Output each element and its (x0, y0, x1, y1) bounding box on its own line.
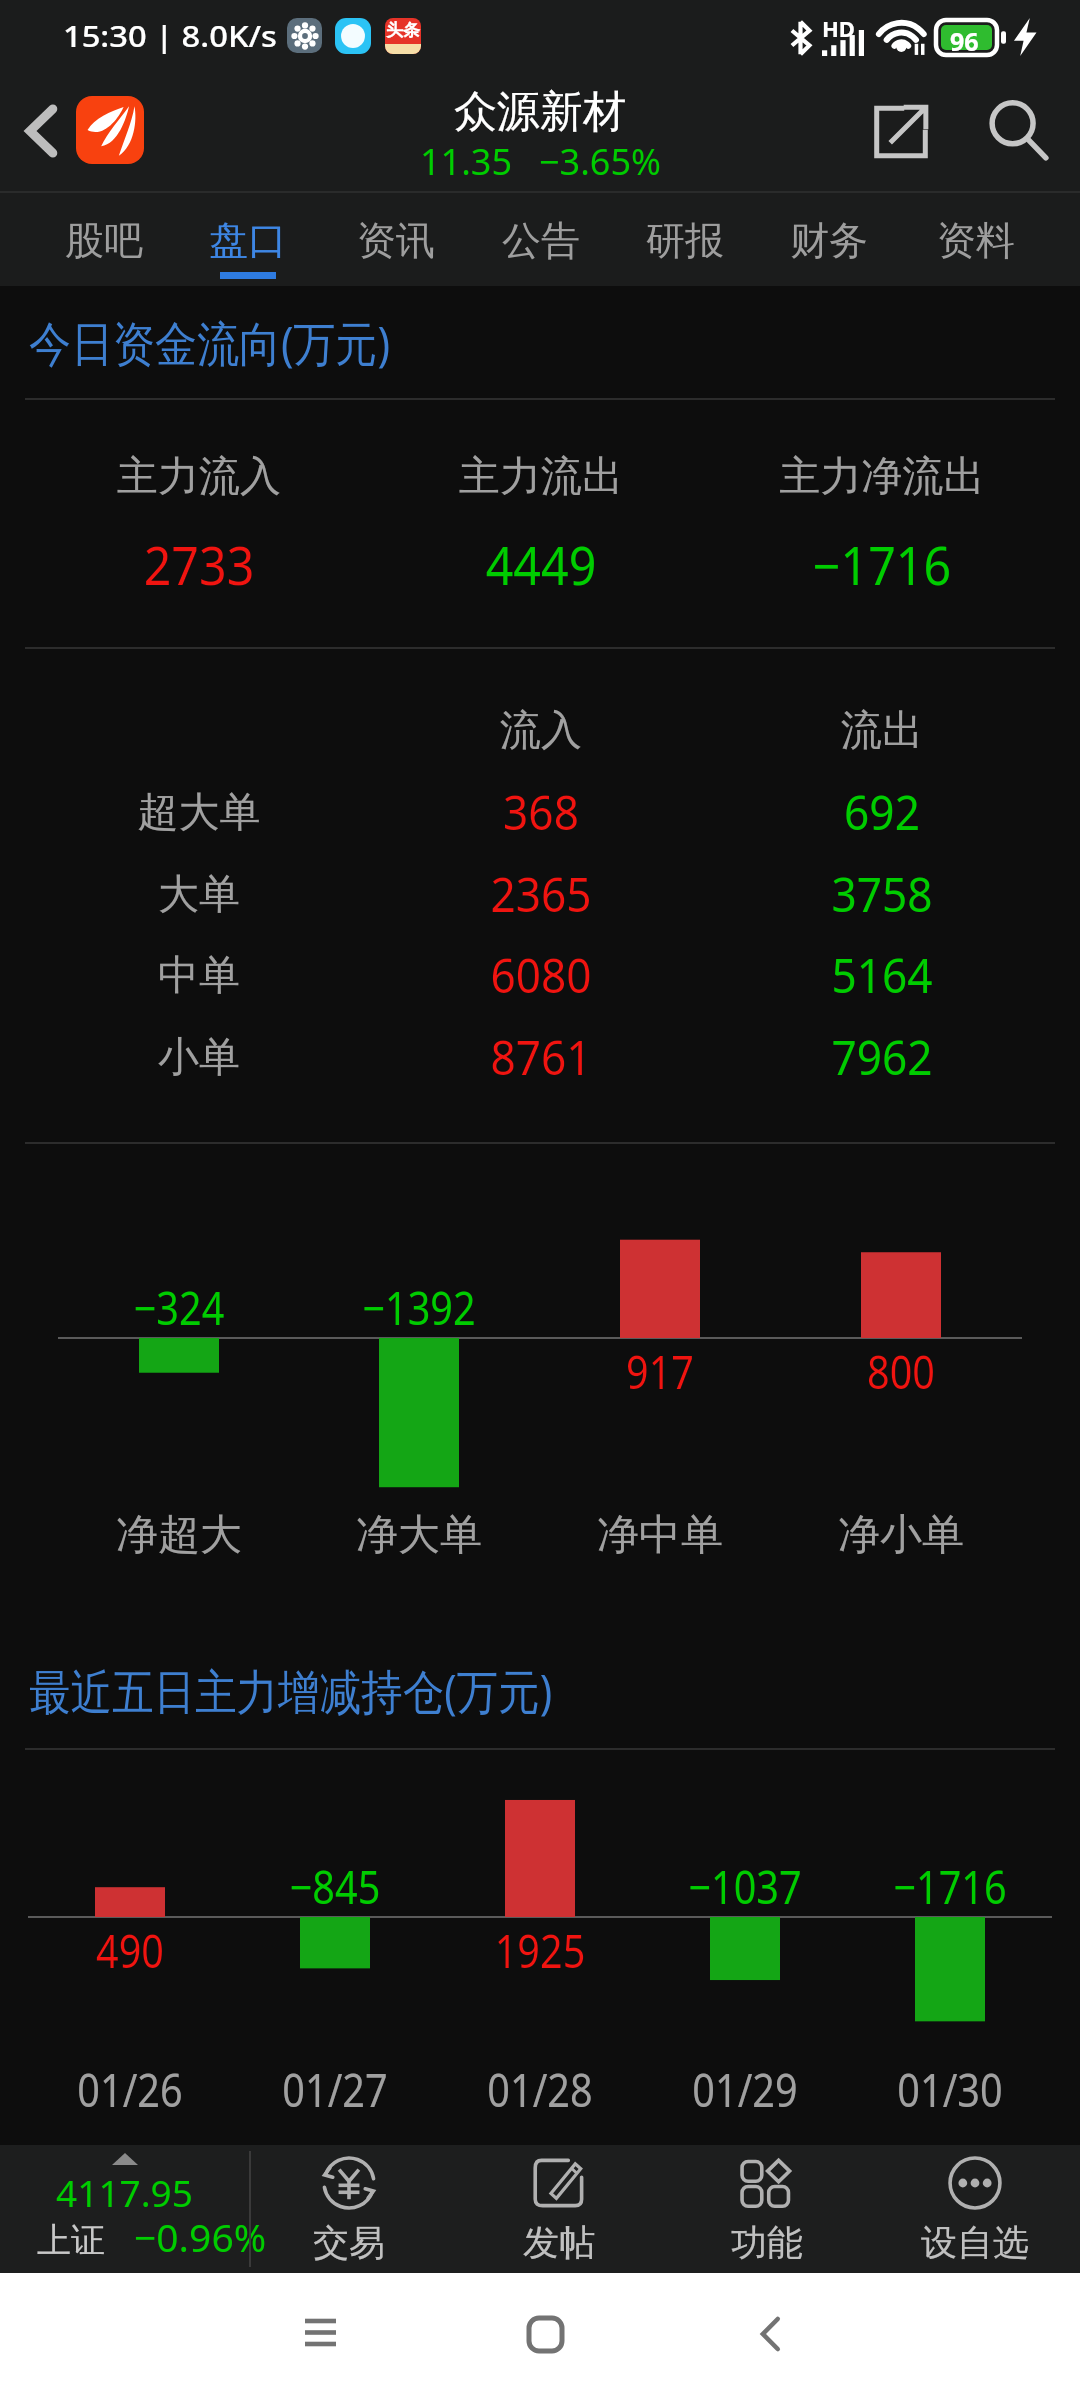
staticText: 最近五日主力增减持仓(万元) (29, 1658, 552, 1724)
staticText: 01/27 (115, 2059, 555, 2120)
button[interactable]: 研报 (625, 195, 745, 286)
staticText: 01/28 (320, 2059, 760, 2120)
staticText: −324 (0, 1276, 394, 1339)
staticText: 发帖 (459, 2220, 659, 2265)
staticText: 917 (445, 1340, 875, 1403)
staticText: 大单 (0, 869, 449, 921)
button[interactable]: 设自选 (875, 2145, 1075, 2273)
staticText: 01/29 (525, 2059, 965, 2120)
staticText: 2733 (0, 529, 431, 600)
staticText: 7962 (652, 1024, 1080, 1089)
staticText: 小单 (0, 1032, 449, 1084)
button[interactable]: Back (8, 97, 76, 165)
staticText: 净小单 (651, 1509, 1080, 1562)
button[interactable]: 发帖 (459, 2145, 659, 2273)
staticText: 众源新材 (290, 85, 790, 139)
staticText: 流出 (632, 705, 1080, 757)
staticText: 368 (311, 779, 771, 844)
button[interactable]: Eastmoney home (76, 96, 144, 164)
staticText: 490 (0, 1919, 345, 1982)
staticText: 01/30 (730, 2059, 1080, 2120)
button[interactable]: 公告 (481, 195, 601, 286)
staticText: 净超大 (0, 1509, 429, 1562)
staticText: 01/26 (0, 2059, 350, 2120)
staticText: 692 (652, 779, 1080, 844)
staticText: −0.96% (134, 2210, 267, 2263)
staticText: 11.35 (420, 137, 513, 186)
button[interactable]: Share (862, 93, 940, 171)
staticText: 财务 (769, 216, 889, 265)
staticText: 8761 (311, 1024, 771, 1089)
staticText: −1716 (735, 1855, 1080, 1918)
staticText: 6080 (311, 942, 771, 1007)
button[interactable]: 资料 (916, 195, 1036, 286)
staticText: 主力流出 (291, 451, 791, 503)
staticText: 流入 (291, 705, 791, 757)
staticText: 头条 (386, 20, 420, 41)
staticText: 800 (686, 1340, 1080, 1403)
staticText: 3758 (652, 861, 1080, 926)
staticText: −1392 (204, 1276, 634, 1339)
staticText: 研报 (625, 216, 745, 265)
button[interactable]: Back (730, 2294, 810, 2374)
button[interactable]: 股吧 (44, 195, 164, 286)
staticText: 15:30 | 8.0K/s (63, 16, 278, 55)
button[interactable]: 资讯 (336, 195, 456, 286)
button[interactable]: Home (505, 2294, 585, 2374)
button[interactable]: Recent apps (280, 2292, 360, 2372)
staticText: 5164 (652, 942, 1080, 1007)
staticText: 1925 (325, 1919, 755, 1982)
staticText: −1037 (530, 1855, 960, 1918)
staticText: 股吧 (44, 216, 164, 265)
staticText: 超大单 (0, 787, 449, 839)
staticText: −1716 (649, 529, 1080, 600)
staticText: 盘口 (188, 216, 308, 265)
staticText: 设自选 (875, 2220, 1075, 2265)
staticText: 4449 (308, 529, 773, 600)
staticText: 资料 (916, 216, 1036, 265)
staticText: 4117.95 (0, 2167, 249, 2217)
staticText: 今日资金流向(万元) (29, 310, 390, 376)
button[interactable]: 盘口 (188, 195, 308, 286)
staticText: 功能 (667, 2220, 867, 2265)
staticText: 2365 (311, 861, 771, 926)
button[interactable]: 交易 (249, 2145, 449, 2273)
staticText: −3.65% (539, 137, 661, 186)
staticText: 净大单 (169, 1509, 669, 1562)
staticText: 上证 (37, 2219, 105, 2262)
staticText: 主力流入 (0, 451, 449, 503)
staticText: 主力净流出 (632, 451, 1080, 503)
staticText: 96 (950, 24, 979, 58)
button[interactable]: Search (976, 88, 1062, 174)
staticText: 净中单 (410, 1509, 910, 1562)
staticText: HD (822, 13, 855, 43)
button[interactable]: Shanghai Composite index (0, 2145, 249, 2273)
staticText: 交易 (249, 2220, 449, 2265)
staticText: 公告 (481, 216, 601, 265)
staticText: −845 (120, 1855, 550, 1918)
button[interactable]: 功能 (667, 2145, 867, 2273)
button[interactable]: 财务 (769, 195, 889, 286)
staticText: 资讯 (336, 216, 456, 265)
staticText: 中单 (0, 950, 449, 1002)
